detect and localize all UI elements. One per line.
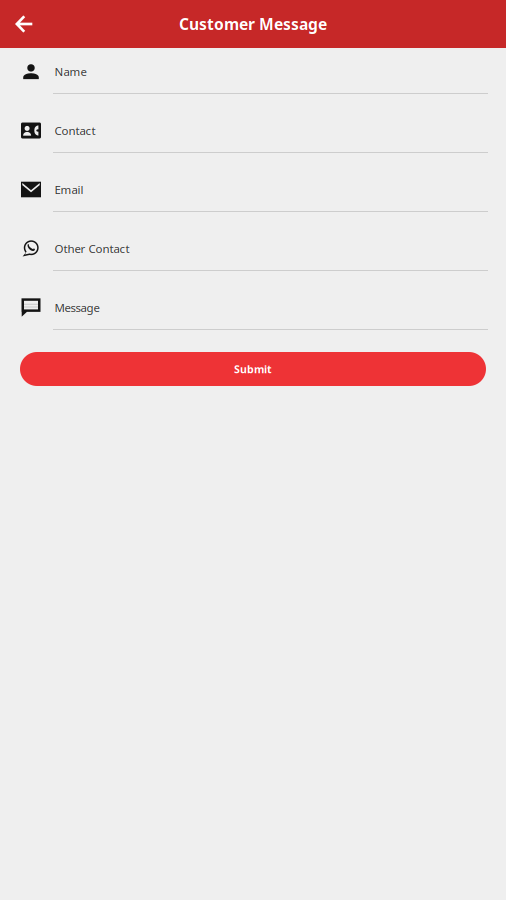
staticText: Submit xyxy=(234,362,272,376)
button[interactable]: Email xyxy=(0,160,506,219)
staticText: Customer Message xyxy=(179,13,327,35)
button[interactable]: Contact xyxy=(0,101,506,160)
staticText: Message xyxy=(54,300,99,315)
staticText: Name xyxy=(54,64,86,79)
staticText: Email xyxy=(54,182,83,197)
button[interactable]: Submit xyxy=(20,352,486,386)
button[interactable]: Other Contact xyxy=(0,219,506,278)
staticText: Contact xyxy=(54,123,95,138)
button[interactable]: Name xyxy=(0,42,506,101)
button[interactable]: Message xyxy=(0,278,506,337)
button[interactable]: Back xyxy=(0,0,48,48)
staticText: Other Contact xyxy=(54,241,129,256)
